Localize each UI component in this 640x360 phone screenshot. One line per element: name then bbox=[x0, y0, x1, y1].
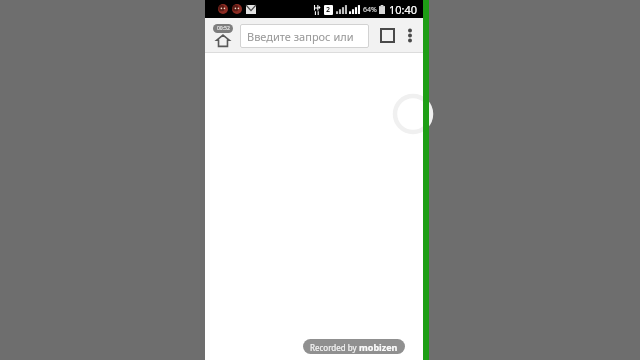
staticText: mobizen bbox=[359, 341, 398, 353]
button[interactable]: Введите запрос или bbox=[240, 24, 369, 48]
staticText: 64% bbox=[363, 5, 377, 15]
button[interactable]: Tabs bbox=[374, 19, 400, 52]
staticText: 00:52 bbox=[217, 25, 230, 32]
staticText: 2 bbox=[326, 5, 331, 15]
staticText: Recorded by bbox=[310, 342, 359, 353]
button[interactable]: More options bbox=[400, 19, 420, 52]
staticText: 10:40 bbox=[389, 2, 418, 17]
staticText: Введите запрос или bbox=[247, 29, 354, 44]
button[interactable]: Home bbox=[208, 19, 238, 52]
